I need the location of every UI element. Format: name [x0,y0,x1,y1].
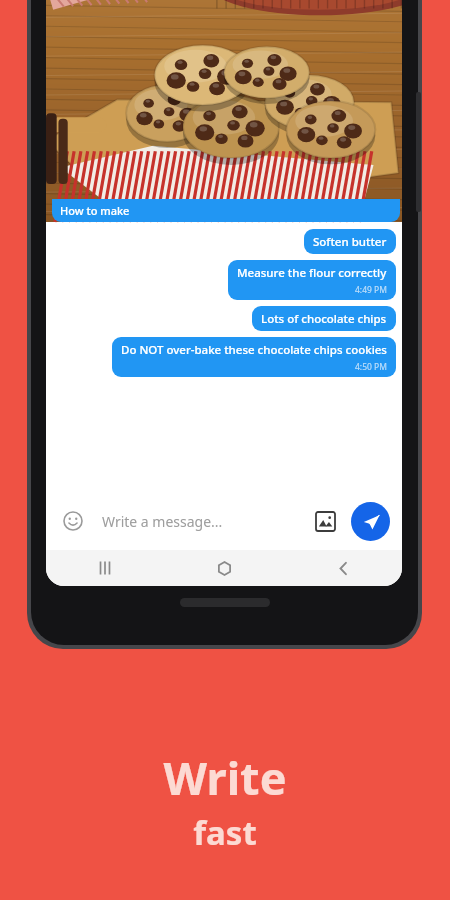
staticText: Soften butter [313,234,387,250]
button[interactable]: Back [321,550,365,586]
button[interactable]: Measure the flour correctly [228,260,396,300]
button[interactable]: Emoji [58,506,88,536]
staticText: 4:49 PM [355,284,387,296]
button[interactable]: Write a message... [102,492,310,550]
staticText: Measure the flour correctly [237,265,387,281]
staticText: Lots of chocolate chips [261,311,387,327]
staticText: Write a message... [102,512,223,531]
button[interactable]: Home [202,550,246,586]
staticText: fast [193,810,257,855]
staticText: Write [163,747,287,808]
button[interactable]: Lots of chocolate chips [252,306,396,331]
staticText: How to make [60,203,130,218]
button[interactable]: Do NOT over-bake these chocolate chips c… [112,337,396,377]
button[interactable]: Attach image [310,506,340,536]
button[interactable]: Recent apps [83,550,127,586]
button[interactable]: Soften butter [304,229,396,254]
staticText: 4:50 PM [355,361,387,373]
button[interactable]: Send [351,502,390,541]
staticText: Do NOT over-bake these chocolate chips c… [121,342,387,358]
button[interactable]: How to make [52,199,400,222]
